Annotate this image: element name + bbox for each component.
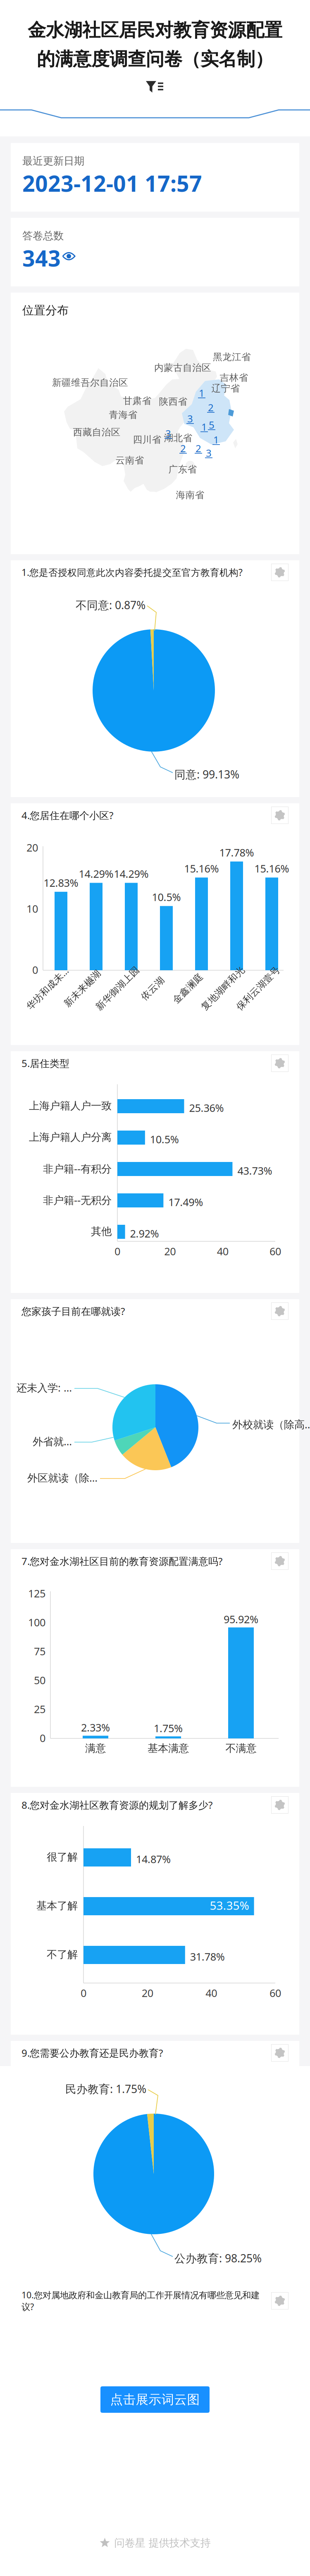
staticText: 95.92% <box>224 1612 258 1626</box>
staticText: 40 <box>217 1244 228 1258</box>
staticText: 4.您居住在哪个小区? <box>21 809 113 822</box>
staticText: 同意: 99.13% <box>174 767 239 782</box>
staticText: 新未来樾湖 <box>59 983 106 994</box>
staticText: 外区就读（除… <box>27 1471 98 1485</box>
button[interactable]: 图表设置 <box>271 2292 289 2309</box>
staticText: 1.您是否授权同意此次内容委托提交至官方教育机构? <box>21 566 243 579</box>
staticText: 新华御湖上园 <box>89 983 146 994</box>
staticText: 甘肃省 <box>123 395 151 407</box>
staticText: 14.87% <box>136 1852 171 1866</box>
staticText: 满意 <box>85 1742 106 1755</box>
staticText: 上海户籍人户分离 <box>29 1131 112 1144</box>
staticText: 吉林省 <box>220 372 248 383</box>
staticText: 辽宁省 <box>211 383 240 394</box>
staticText: 西藏自治区 <box>73 426 120 438</box>
staticText: 其他 <box>91 1225 112 1238</box>
staticText: 不了解 <box>47 1948 78 1961</box>
staticText: 不满意 <box>225 1742 256 1755</box>
staticText: 外校就读（除高… <box>232 1417 310 1431</box>
staticText: 答卷总数 <box>22 229 64 242</box>
staticText: 复地湖畔和光 <box>194 983 252 994</box>
staticText: 民办教育: 1.75% <box>65 2082 146 2096</box>
staticText: 金鑫澜庭 <box>169 983 207 994</box>
staticText: 0 <box>40 1731 45 1745</box>
staticText: 5.居住类型 <box>21 1057 69 1070</box>
staticText: 问卷星 提供技术支持 <box>114 2536 211 2549</box>
staticText: 60 <box>269 1244 281 1258</box>
staticText: 10 <box>26 902 38 916</box>
button[interactable]: 图表设置 <box>271 2044 289 2062</box>
staticText: 14.29% <box>79 867 113 881</box>
staticText: 1 <box>213 433 219 446</box>
staticText: 保利云湖壹号 <box>230 983 287 994</box>
staticText: 15.16% <box>254 861 289 875</box>
button[interactable]: 图表设置 <box>271 807 289 824</box>
staticText: 海南省 <box>176 489 204 501</box>
staticText: 基本满意 <box>148 1742 189 1755</box>
staticText: 2 <box>208 401 214 414</box>
staticText: 您家孩子目前在哪就读? <box>21 1305 125 1318</box>
button[interactable]: 点击展示词云图 <box>100 2386 210 2413</box>
staticText: 1 <box>199 386 205 400</box>
staticText: 很了解 <box>47 1851 78 1863</box>
staticText: 的满意度调查问卷（实名制） <box>37 48 273 70</box>
staticText: 公办教育: 98.25% <box>174 2251 262 2265</box>
staticText: 53.35% <box>210 1898 249 1913</box>
staticText: 0 <box>32 963 38 977</box>
staticText: 7.您对金水湖社区目前的教育资源配置满意吗? <box>21 1555 222 1568</box>
staticText: 湖北省 <box>164 432 192 444</box>
staticText: 10.5% <box>152 890 181 904</box>
staticText: 10.5% <box>150 1132 179 1146</box>
staticText: 点击展示词云图 <box>110 2392 200 2407</box>
staticText: 0 <box>114 1244 120 1258</box>
button[interactable]: 图表设置 <box>271 1302 289 1320</box>
staticText: 25 <box>34 1702 45 1716</box>
button[interactable]: 图表设置 <box>271 1055 289 1072</box>
staticText: 60 <box>269 1986 281 2000</box>
staticText: 0 <box>81 1986 86 2000</box>
staticText: 四川省 <box>133 434 161 445</box>
staticText: 12.83% <box>44 876 78 890</box>
staticText: 40 <box>206 1986 217 2000</box>
staticText: 3 <box>187 412 193 425</box>
staticText: 1.75% <box>154 1721 183 1735</box>
staticText: 15.16% <box>184 861 219 875</box>
staticText: 17.49% <box>168 1195 203 1209</box>
staticText: 2.92% <box>130 1226 159 1240</box>
staticText: 2 <box>196 442 201 455</box>
staticText: 125 <box>28 1586 45 1600</box>
staticText: 内蒙古自治区 <box>154 362 211 374</box>
staticText: 金水湖社区居民对教育资源配置 <box>28 19 282 41</box>
staticText: 2.33% <box>81 1721 110 1734</box>
staticText: 云南省 <box>116 455 144 466</box>
staticText: 343 <box>22 243 61 273</box>
staticText: 25.36% <box>189 1101 224 1115</box>
staticText: 2 <box>180 442 186 455</box>
staticText: 31.78% <box>190 1950 225 1963</box>
button[interactable]: 图表设置 <box>271 564 289 581</box>
staticText: 非户籍--有积分 <box>43 1162 112 1176</box>
staticText: 20 <box>26 841 38 854</box>
staticText: 43.73% <box>237 1164 272 1178</box>
staticText: 2023-12-01 17:57 <box>22 169 202 198</box>
staticText: 青海省 <box>109 409 137 421</box>
staticText: 10.您对属地政府和金山教育局的工作开展情况有哪些意见和建议? <box>21 2289 260 2313</box>
staticText: 5 <box>209 418 215 431</box>
staticText: 新疆维吾尔自治区 <box>52 377 128 388</box>
button[interactable]: 图表设置 <box>271 1552 289 1570</box>
button[interactable]: 图表设置 <box>271 1796 289 1814</box>
staticText: 17.78% <box>219 845 254 859</box>
staticText: 50 <box>34 1673 45 1687</box>
staticText: 75 <box>34 1644 45 1658</box>
staticText: 依云湖 <box>138 983 167 994</box>
staticText: 黑龙江省 <box>213 351 251 363</box>
staticText: 最近更新日期 <box>22 155 84 167</box>
staticText: 20 <box>142 1986 153 2000</box>
staticText: 还未入学: … <box>17 1381 72 1395</box>
staticText: 外省就… <box>33 1434 72 1448</box>
staticText: 非户籍--无积分 <box>43 1193 112 1207</box>
staticText: 不同意: 0.87% <box>76 598 145 612</box>
staticText: 基本了解 <box>36 1899 78 1912</box>
staticText: 14.29% <box>114 867 149 881</box>
staticText: 陕西省 <box>159 396 187 407</box>
